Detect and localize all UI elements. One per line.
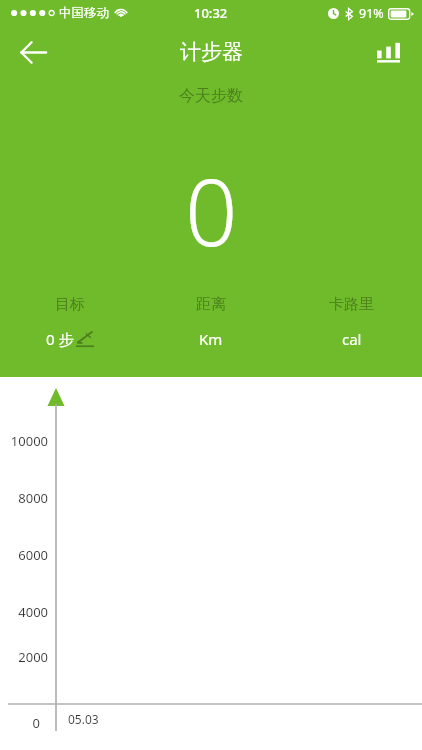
staticText: 目标 [55,295,85,314]
staticText: 91% [359,5,384,22]
button[interactable]: Statistics [362,26,414,78]
staticText: 10:32 [194,4,228,22]
button[interactable]: 卡路里 [281,292,422,352]
button[interactable]: 距离 [140,292,281,352]
staticText: 05.03 [68,711,99,727]
staticText: 今天步数 [179,86,243,106]
staticText: 10000 [0,432,48,450]
staticText: 0 步 [46,329,74,349]
staticText: 卡路里 [329,295,374,314]
staticText: 8000 [0,489,48,507]
staticText: Km [199,329,223,349]
button[interactable]: 目标 [0,292,140,352]
staticText: 0 [0,714,40,732]
button[interactable]: Back [7,26,59,78]
staticText: 4000 [0,603,48,621]
staticText: 0 [185,148,238,273]
staticText: 计步器 [180,39,243,65]
staticText: 中国移动 [59,5,109,21]
staticText: 6000 [0,546,48,564]
staticText: 2000 [0,648,48,666]
staticText: 距离 [196,295,226,314]
staticText: cal [342,329,362,349]
